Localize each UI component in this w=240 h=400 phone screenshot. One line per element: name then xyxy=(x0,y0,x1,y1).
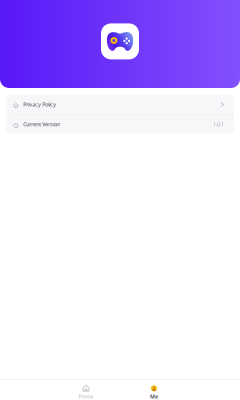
staticText: Home xyxy=(78,393,93,400)
staticText: Privacy Policy xyxy=(23,101,56,108)
staticText: 1.0.1 xyxy=(213,121,224,128)
staticText: Current Version xyxy=(23,121,60,128)
button[interactable]: Current Version xyxy=(6,115,234,134)
button[interactable]: Home xyxy=(64,379,108,400)
staticText: Me xyxy=(150,393,158,400)
button[interactable]: Privacy Policy xyxy=(6,95,234,114)
button[interactable]: Me xyxy=(132,379,176,400)
